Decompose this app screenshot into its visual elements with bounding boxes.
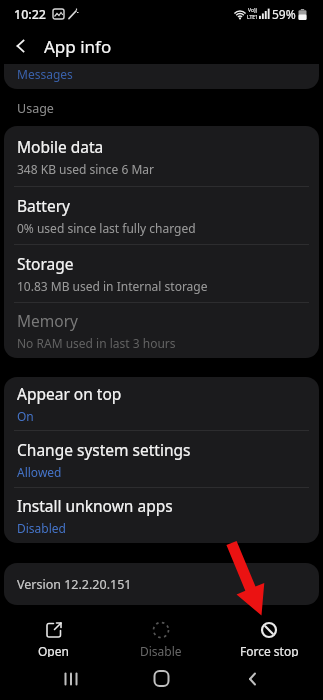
staticText: 348 KB used since 6 Mar: [17, 161, 154, 177]
button[interactable]: Messages: [4, 64, 319, 89]
staticText: Usage: [17, 100, 54, 117]
staticText: Install unknown apps: [17, 495, 173, 516]
button[interactable]: Open: [0, 605, 107, 657]
button[interactable]: Memory: [4, 303, 319, 358]
staticText: Allowed: [17, 464, 62, 480]
button[interactable]: Version 12.2.20.151: [4, 563, 319, 605]
button[interactable]: Install unknown apps: [4, 488, 319, 543]
staticText: Memory: [17, 310, 78, 331]
staticText: Appear on top: [17, 383, 122, 404]
button[interactable]: Battery: [4, 187, 319, 244]
button[interactable]: [207, 657, 298, 700]
staticText: Storage: [17, 253, 74, 274]
button[interactable]: [116, 657, 207, 700]
button[interactable]: Appear on top: [4, 377, 319, 430]
staticText: Vo)): [248, 7, 257, 14]
staticText: LTE1: [247, 14, 258, 21]
staticText: Change system settings: [17, 439, 191, 460]
staticText: 10:22: [14, 6, 47, 23]
button[interactable]: Storage: [4, 245, 319, 302]
staticText: Messages: [17, 66, 73, 82]
button[interactable]: Force stop: [215, 605, 323, 657]
staticText: Open: [38, 643, 69, 657]
staticText: Mobile data: [17, 136, 104, 157]
button[interactable]: [5, 30, 37, 62]
button[interactable]: Change system settings: [4, 431, 319, 487]
staticText: Battery: [17, 195, 71, 216]
staticText: No RAM used in last 3 hours: [17, 335, 176, 351]
staticText: 59%: [272, 6, 296, 22]
button[interactable]: Mobile data: [4, 126, 319, 186]
button[interactable]: Disable: [107, 605, 215, 657]
staticText: Version 12.2.20.151: [17, 576, 132, 593]
staticText: 0% used since last fully charged: [17, 220, 196, 236]
staticText: Disabled: [17, 520, 66, 536]
staticText: 10.83 MB used in Internal storage: [17, 278, 208, 294]
staticText: On: [17, 408, 34, 424]
button[interactable]: [25, 657, 116, 700]
staticText: App info: [44, 35, 112, 58]
staticText: Force stop: [240, 643, 299, 657]
staticText: Disable: [140, 643, 182, 657]
